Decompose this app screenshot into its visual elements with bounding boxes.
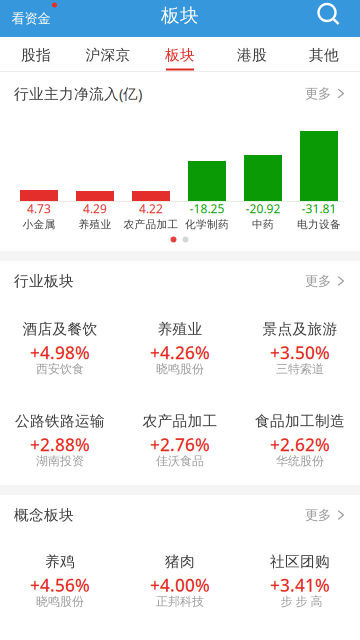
staticText: -31.81	[301, 200, 336, 216]
staticText: -20.92	[245, 200, 280, 216]
staticText: +4.00%	[150, 573, 210, 596]
staticText: 景点及旅游	[262, 320, 337, 338]
staticText: 行业主力净流入(亿)	[14, 84, 142, 103]
staticText: 三特索道	[276, 362, 324, 376]
staticText: 中药	[252, 218, 274, 231]
button[interactable]: 更多	[291, 77, 360, 110]
button[interactable]: 景点及旅游	[0, 0, 360, 640]
staticText: 板块	[165, 46, 195, 64]
staticText: 晓鸣股份	[36, 594, 84, 609]
staticText: 更多	[305, 273, 331, 289]
staticText: 华统股份	[276, 454, 324, 468]
staticText: 公路铁路运输	[15, 412, 105, 430]
staticText: 概念板块	[14, 506, 74, 524]
staticText: 4.22	[139, 200, 163, 216]
staticText: 农产品加工	[142, 412, 217, 430]
staticText: -18.25	[189, 200, 224, 216]
staticText: +4.56%	[30, 573, 90, 596]
button[interactable]: 农产品加工	[0, 0, 360, 640]
staticText: 更多	[305, 85, 331, 102]
staticText: 西安饮食	[36, 362, 84, 376]
button[interactable]: 看资金	[0, 0, 70, 37]
button[interactable]: 猪肉	[0, 0, 360, 640]
button[interactable]: 养鸡	[0, 0, 360, 640]
staticText: +2.76%	[150, 433, 210, 456]
button[interactable]: 公路铁路运输	[0, 0, 360, 640]
button[interactable]: 更多	[291, 499, 360, 531]
staticText: 股指	[21, 46, 51, 64]
staticText: 养鸡	[45, 552, 75, 570]
staticText: +4.98%	[30, 341, 90, 364]
staticText: 更多	[305, 507, 331, 523]
staticText: 4.29	[83, 200, 107, 216]
staticText: 其他	[309, 46, 339, 64]
staticText: 看资金	[11, 10, 50, 27]
staticText: +4.26%	[150, 341, 210, 364]
button[interactable]: 沪深京	[0, 0, 360, 640]
staticText: 猪肉	[165, 552, 195, 570]
staticText: 步步高	[280, 594, 322, 609]
staticText: 佳沃食品	[156, 454, 204, 468]
staticText: 养殖业	[78, 218, 111, 231]
staticText: 小金属	[22, 218, 55, 231]
staticText: 食品加工制造	[255, 412, 345, 430]
staticText: 化学制药	[185, 218, 229, 231]
staticText: 农产品加工	[123, 218, 178, 231]
staticText: 行业板块	[14, 272, 74, 290]
button[interactable]: 港股	[0, 0, 360, 640]
button[interactable]: 其他	[0, 0, 360, 640]
button[interactable]: 股指	[0, 0, 360, 640]
staticText: 4.73	[27, 200, 51, 216]
staticText: 正邦科技	[156, 594, 204, 609]
staticText: 湖南投资	[36, 454, 84, 468]
staticText: +2.62%	[270, 433, 330, 456]
button[interactable]: 更多	[291, 265, 360, 297]
staticText: 社区团购	[270, 552, 330, 570]
staticText: +3.41%	[270, 573, 330, 596]
staticText: +3.50%	[270, 341, 330, 364]
button[interactable]: 食品加工制造	[0, 0, 360, 640]
staticText: 板块	[161, 4, 199, 27]
button[interactable]: 板块	[0, 0, 360, 640]
staticText: +2.88%	[30, 433, 90, 456]
staticText: 港股	[237, 46, 267, 64]
staticText: 养殖业	[157, 320, 202, 338]
button[interactable]: 酒店及餐饮	[0, 0, 360, 640]
button[interactable]: Search	[305, 0, 351, 32]
staticText: 电力设备	[297, 218, 341, 231]
staticText: 酒店及餐饮	[22, 320, 97, 338]
button[interactable]: 养殖业	[0, 0, 360, 640]
button[interactable]: 社区团购	[0, 0, 360, 640]
staticText: 晓鸣股份	[156, 362, 204, 376]
staticText: 沪深京	[85, 46, 130, 64]
